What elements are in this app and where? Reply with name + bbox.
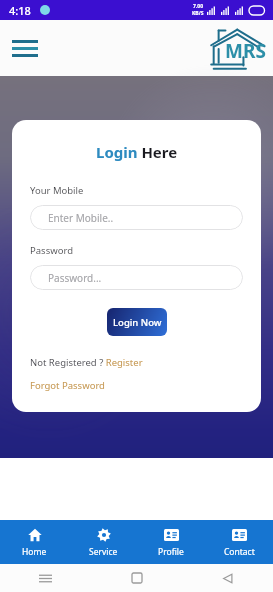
button[interactable]: Forgot Password xyxy=(30,379,243,392)
other: MRS logo xyxy=(205,25,267,71)
button[interactable]: Password... xyxy=(30,265,243,290)
staticText: Enter Mobile.. xyxy=(48,211,114,225)
button[interactable]: Recents xyxy=(39,572,52,585)
button[interactable]: Contact xyxy=(205,520,273,564)
staticText: Profile xyxy=(158,546,184,558)
staticText: MRS xyxy=(225,38,266,64)
staticText: Login Here xyxy=(96,142,178,162)
staticText: Service xyxy=(89,546,118,558)
staticText: Home xyxy=(22,546,47,558)
button[interactable]: Back xyxy=(222,573,233,584)
staticText: Not Registered ? Register xyxy=(30,356,143,369)
button[interactable]: Login Now xyxy=(107,308,167,336)
staticText: Login Now xyxy=(113,316,162,329)
staticText: 7.00 xyxy=(193,3,203,10)
button[interactable]: Home xyxy=(0,520,69,564)
staticText: Password xyxy=(30,244,73,257)
button[interactable]: Menu xyxy=(12,38,38,58)
staticText: Password... xyxy=(48,271,102,285)
staticText: Forgot Password xyxy=(30,379,105,392)
staticText: Contact xyxy=(224,546,255,558)
staticText: KB/S xyxy=(192,10,204,17)
button[interactable]: Home xyxy=(132,573,142,583)
button[interactable]: Profile xyxy=(137,520,205,564)
staticText: Your Mobile xyxy=(30,184,84,197)
staticText: 4:18 xyxy=(9,3,31,18)
button[interactable]: Service xyxy=(69,520,137,564)
button[interactable]: Not Registered ? Register xyxy=(30,356,243,369)
button[interactable]: Enter Mobile.. xyxy=(30,205,243,230)
